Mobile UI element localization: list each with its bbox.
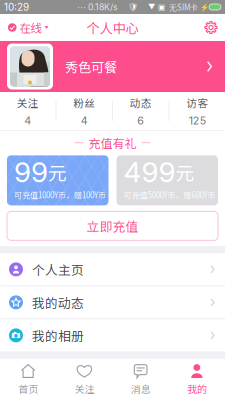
button[interactable]: 我的相册 <box>0 319 225 351</box>
staticText: 我的 <box>187 381 207 396</box>
staticText: 关注 <box>17 95 39 110</box>
button[interactable]: 我的动态 <box>0 286 225 318</box>
staticText: 无SIM卡 <box>169 1 198 13</box>
button[interactable]: 关注 <box>0 86 55 136</box>
staticText: 499 <box>123 155 175 189</box>
button[interactable]: 我的 <box>169 354 225 400</box>
staticText: 可充值5000Y币，赠600Y币 <box>123 189 215 201</box>
button[interactable]: 在线 <box>1 14 55 41</box>
staticText: 粉丝 <box>73 95 95 110</box>
button[interactable]: 立即充值 <box>7 211 218 240</box>
staticText: 元 <box>48 159 67 186</box>
staticText: ▼ <box>148 3 155 11</box>
button[interactable]: 499 <box>116 155 218 205</box>
button[interactable]: 粉丝 <box>56 86 112 136</box>
staticText: 可充值1000Y币，赠100Y币 <box>14 189 106 201</box>
staticText: ▣ <box>155 2 169 12</box>
staticText: 访客 <box>186 95 208 110</box>
staticText: 🛡 <box>118 2 148 12</box>
staticText: 我的动态 <box>32 293 84 311</box>
button[interactable]: 秀色可餐 <box>0 41 225 92</box>
staticText: 元 <box>175 159 194 186</box>
staticText: ⚡ <box>198 3 209 11</box>
staticText: 在线 <box>19 19 41 36</box>
staticText: 4 <box>24 114 31 127</box>
staticText: 125 <box>189 114 206 127</box>
staticText: 10:29 <box>4 1 29 13</box>
staticText: 个人中心 <box>86 18 138 37</box>
staticText: 秀色可餐 <box>65 57 117 76</box>
button[interactable]: 消息 <box>112 354 169 400</box>
staticText: 个人主页 <box>32 260 84 278</box>
staticText: 动态 <box>130 95 152 110</box>
button[interactable]: 99 <box>7 155 108 205</box>
staticText: 立即充值 <box>86 217 138 235</box>
staticText: 我的相册 <box>32 326 84 344</box>
staticText: 关注 <box>74 381 94 396</box>
button[interactable]: 首页 <box>0 354 56 400</box>
button[interactable]: 个人主页 <box>0 253 225 285</box>
staticText: 6 <box>137 114 144 127</box>
button[interactable]: 访客 <box>169 86 225 136</box>
button[interactable]: 动态 <box>113 86 168 136</box>
staticText: 首页 <box>18 381 38 396</box>
button[interactable]: 关注 <box>56 354 112 400</box>
staticText: ⋯ <box>77 2 86 12</box>
staticText: 99 <box>14 155 48 189</box>
staticText: 消息 <box>131 381 151 396</box>
button[interactable]: Settings <box>198 14 224 40</box>
staticText: 充值有礼 <box>88 134 136 151</box>
staticText: 0.18K/s <box>86 2 118 12</box>
staticText: 4 <box>81 114 88 127</box>
